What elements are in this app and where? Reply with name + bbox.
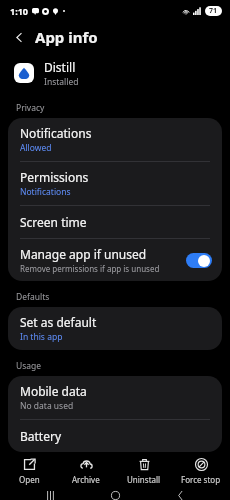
staticText: Uninstall <box>127 474 161 485</box>
staticText: Archive <box>72 474 100 485</box>
staticText: Usage <box>16 360 42 372</box>
staticText: App info <box>35 27 98 47</box>
staticText: Defaults <box>16 291 50 303</box>
button[interactable]: Archive <box>58 455 114 488</box>
staticText: Privacy <box>16 102 45 114</box>
button[interactable]: Manage app if unused toggle <box>186 253 212 268</box>
staticText: Allowed <box>20 142 52 154</box>
staticText: Set as default <box>20 314 97 330</box>
staticText: Remove permissions if app is unused <box>20 263 160 274</box>
button[interactable]: Recents <box>35 490 65 500</box>
staticText: No data used <box>20 400 74 412</box>
button[interactable]: Home <box>100 490 130 500</box>
staticText: 71 <box>209 6 218 16</box>
button[interactable]: Force stop <box>173 455 229 488</box>
button[interactable]: Back <box>165 490 195 500</box>
staticText: Screen time <box>20 214 87 230</box>
button[interactable]: Screen time <box>8 206 222 238</box>
staticText: Notifications <box>20 125 92 141</box>
staticText: 1:10 <box>10 5 28 17</box>
button[interactable]: Distill <box>0 52 230 94</box>
button[interactable]: Battery <box>8 420 222 452</box>
staticText: Distill <box>44 59 76 75</box>
staticText: Battery <box>20 428 62 444</box>
staticText: Manage app if unused <box>20 246 147 262</box>
button[interactable]: Open <box>1 455 57 488</box>
button[interactable]: Notifications <box>8 118 222 161</box>
staticText: In this app <box>20 331 63 343</box>
staticText: Force stop <box>181 474 221 485</box>
staticText: Permissions <box>20 169 89 185</box>
staticText: Notifications <box>20 186 71 198</box>
button[interactable]: Permissions <box>8 162 222 205</box>
button[interactable]: Mobile data <box>8 376 222 419</box>
button[interactable]: Manage app if unused <box>8 239 222 281</box>
staticText: Installed <box>44 76 79 88</box>
staticText: Mobile data <box>20 383 87 399</box>
button[interactable]: Set as default <box>8 307 222 350</box>
button[interactable]: Back <box>6 24 32 50</box>
button[interactable]: Uninstall <box>116 455 172 488</box>
staticText: Open <box>19 474 40 485</box>
